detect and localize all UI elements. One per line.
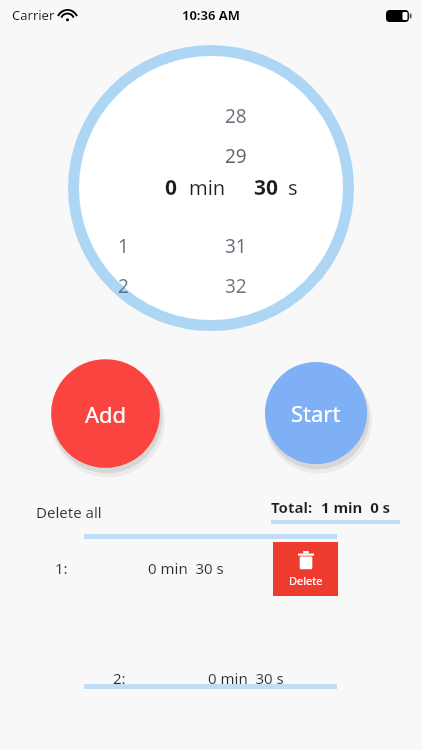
- staticText: Add: [85, 399, 127, 429]
- staticText: Delete all: [36, 502, 102, 522]
- staticText: 29: [225, 143, 247, 169]
- staticText: Start: [291, 398, 341, 428]
- button[interactable]: Total:: [271, 497, 400, 524]
- staticText: 2:: [113, 668, 126, 688]
- staticText: 0: [165, 173, 178, 202]
- button[interactable]: 1:: [0, 542, 422, 596]
- staticText: Carrier: [12, 6, 55, 24]
- button[interactable]: Delete timer 1: [273, 542, 338, 596]
- button[interactable]: Start: [262, 359, 370, 467]
- staticText: 1 min 0 s: [321, 497, 391, 517]
- button[interactable]: Delete all: [30, 499, 108, 525]
- staticText: Delete: [289, 573, 323, 588]
- staticText: 0 min 30 s: [208, 668, 284, 688]
- staticText: 30: [254, 173, 279, 202]
- staticText: Total:: [271, 497, 313, 517]
- button[interactable]: Add: [48, 356, 163, 471]
- staticText: 32: [225, 273, 247, 299]
- staticText: 0 min 30 s: [148, 558, 224, 578]
- staticText: s: [288, 174, 298, 201]
- staticText: 1: [118, 233, 129, 259]
- staticText: 31: [225, 233, 247, 259]
- staticText: 2: [118, 273, 129, 299]
- staticText: 10:36 AM: [182, 6, 241, 24]
- staticText: 1:: [55, 558, 68, 578]
- button[interactable]: 28: [68, 45, 354, 331]
- staticText: 28: [225, 103, 247, 129]
- staticText: min: [189, 174, 226, 201]
